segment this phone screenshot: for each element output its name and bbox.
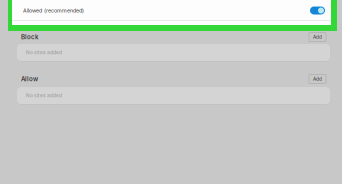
staticText: Add bbox=[313, 76, 322, 82]
button[interactable]: Add bbox=[309, 32, 326, 41]
staticText: No sites added bbox=[26, 50, 62, 55]
staticText: Allow bbox=[21, 75, 38, 83]
staticText: No sites added bbox=[26, 93, 62, 98]
staticText: Add bbox=[313, 34, 322, 40]
button[interactable]: Allowed (recommended) bbox=[0, 0, 337, 31]
staticText: Allowed (recommended) bbox=[23, 7, 84, 14]
button[interactable]: Add bbox=[309, 74, 326, 83]
staticText: Block bbox=[21, 33, 38, 41]
